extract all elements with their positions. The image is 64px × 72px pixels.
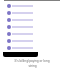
button[interactable] xyxy=(0,16,64,23)
button[interactable] xyxy=(0,30,64,37)
button[interactable] xyxy=(0,37,64,44)
staticText: string xyxy=(28,64,37,68)
button[interactable] xyxy=(0,2,64,9)
button[interactable] xyxy=(0,23,64,30)
button[interactable] xyxy=(0,9,64,16)
staticText: It's billing/paying or long xyxy=(14,59,50,63)
button[interactable] xyxy=(0,44,64,51)
